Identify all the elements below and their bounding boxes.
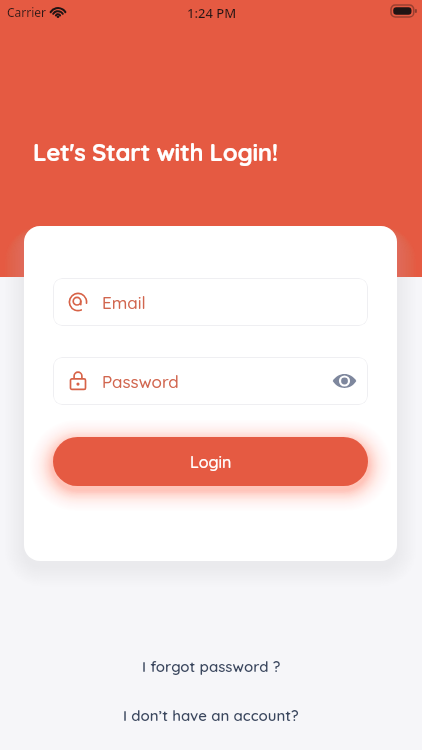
staticText: Password <box>102 371 179 392</box>
staticText: 1:24 PM <box>187 4 237 22</box>
staticText: Let's Start with Login! <box>33 137 278 167</box>
button[interactable]: Login <box>53 437 368 486</box>
button[interactable]: Password <box>53 357 368 405</box>
button[interactable]: Show password <box>329 366 359 396</box>
staticText: Carrier <box>7 4 47 20</box>
button[interactable]: I don’t have an account? <box>111 702 311 729</box>
staticText: I don’t have an account? <box>123 706 299 725</box>
staticText: Email <box>102 292 146 313</box>
staticText: I forgot password ? <box>142 657 281 676</box>
button[interactable]: I forgot password ? <box>130 653 293 680</box>
staticText: Login <box>190 452 232 472</box>
button[interactable]: Email <box>53 278 368 326</box>
